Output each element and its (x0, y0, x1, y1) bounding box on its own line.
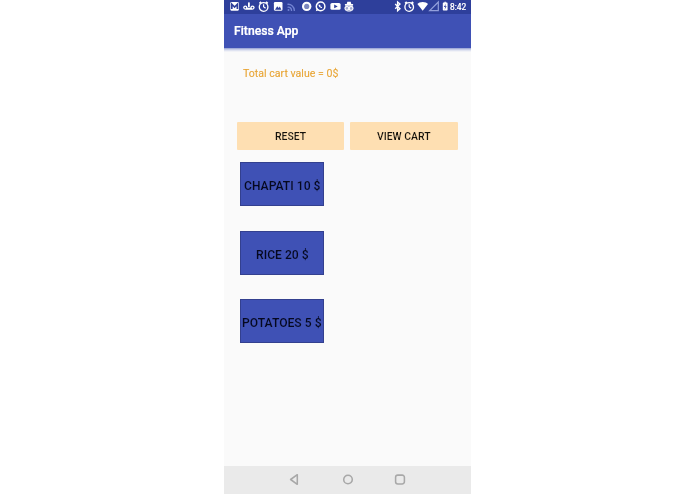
staticText: RICE 20 $ (256, 248, 309, 262)
staticText: Fitness App (234, 24, 299, 38)
staticText: 8:42 (450, 2, 467, 12)
button[interactable]: CHAPATI 10 $ (240, 162, 324, 206)
button[interactable]: VIEW CART (350, 122, 458, 150)
button[interactable]: POTATOES 5 $ (240, 299, 324, 343)
button[interactable]: Back (281, 466, 309, 494)
button[interactable]: Home (334, 466, 362, 494)
staticText: Total cart value = 0$ (243, 67, 339, 79)
button[interactable]: Recents (386, 466, 414, 494)
staticText: CHAPATI 10 $ (244, 179, 321, 193)
staticText: RESET (275, 130, 307, 142)
button[interactable]: RESET (237, 122, 344, 150)
button[interactable]: RICE 20 $ (240, 231, 324, 275)
staticText: POTATOES 5 $ (242, 316, 322, 330)
staticText: VIEW CART (377, 130, 431, 142)
